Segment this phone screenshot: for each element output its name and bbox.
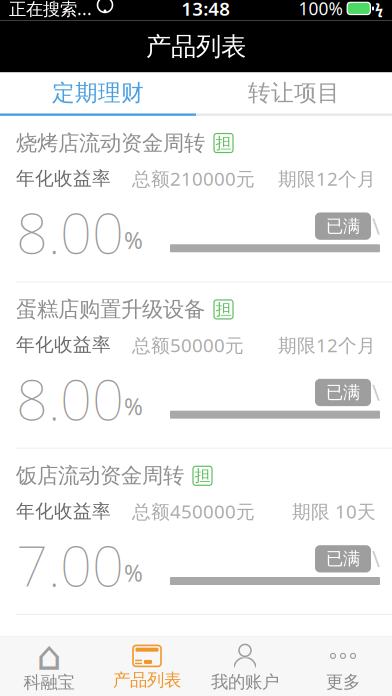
staticText: 8.00 — [16, 195, 124, 269]
staticText: 8.00 — [16, 361, 124, 436]
staticText: 年化收益率 — [16, 167, 111, 190]
staticText: 100% — [299, 0, 343, 20]
staticText: % — [124, 558, 143, 588]
staticText: 我的账户 — [211, 671, 279, 693]
staticText: 总额450000元 — [132, 499, 255, 524]
staticText: 已满 — [326, 548, 360, 569]
staticText: 13:48 — [181, 0, 230, 21]
staticText: ϟ — [375, 0, 383, 18]
staticText: \ — [372, 545, 380, 573]
staticText: 年化收益率 — [16, 333, 111, 356]
staticText: 已满 — [326, 382, 360, 403]
staticText: 总额210000元 — [132, 166, 255, 191]
button[interactable]: 产品列表 — [98, 636, 196, 696]
staticText: 年化收益率 — [16, 500, 111, 523]
staticText: \ — [372, 378, 380, 407]
staticText: 总额50000元 — [132, 332, 244, 357]
staticText: 已满 — [326, 215, 360, 237]
button[interactable]: 转让项目 — [196, 72, 392, 113]
button[interactable]: 我的账户 — [196, 636, 294, 696]
staticText: 期限12个月 — [278, 332, 376, 357]
staticText: 正在搜索... — [9, 0, 92, 20]
staticText: 7.00 — [16, 528, 124, 602]
staticText: 烧烤店流动资金周转 — [16, 130, 205, 156]
staticText: ⌂ — [36, 633, 61, 679]
staticText: 期限12个月 — [278, 166, 376, 191]
staticText: 担 — [215, 133, 231, 153]
staticText: \ — [372, 212, 380, 240]
staticText: 担 — [215, 300, 231, 319]
staticText: 转让项目 — [248, 79, 340, 107]
staticText: 期限 10天 — [292, 499, 376, 524]
button[interactable]: 更多 — [294, 636, 392, 696]
button[interactable]: 定期理财 — [0, 72, 196, 113]
button[interactable]: 饭店流动资金周转 — [0, 448, 392, 614]
staticText: % — [124, 391, 143, 421]
button[interactable]: 烧烤店流动资金周转 — [0, 116, 392, 281]
staticText: 产品列表 — [113, 669, 181, 691]
button[interactable]: 蛋糕店购置升级设备 — [0, 281, 392, 448]
staticText: 担 — [194, 466, 210, 486]
staticText: 蛋糕店购置升级设备 — [16, 296, 205, 322]
staticText: 产品列表 — [146, 31, 246, 62]
staticText: 更多 — [326, 671, 360, 693]
staticText: 饭店流动资金周转 — [16, 463, 184, 489]
staticText: 定期理财 — [52, 79, 144, 107]
staticText: % — [124, 225, 143, 255]
button[interactable]: ⌂ — [0, 636, 98, 696]
staticText: 科融宝 — [23, 672, 74, 693]
